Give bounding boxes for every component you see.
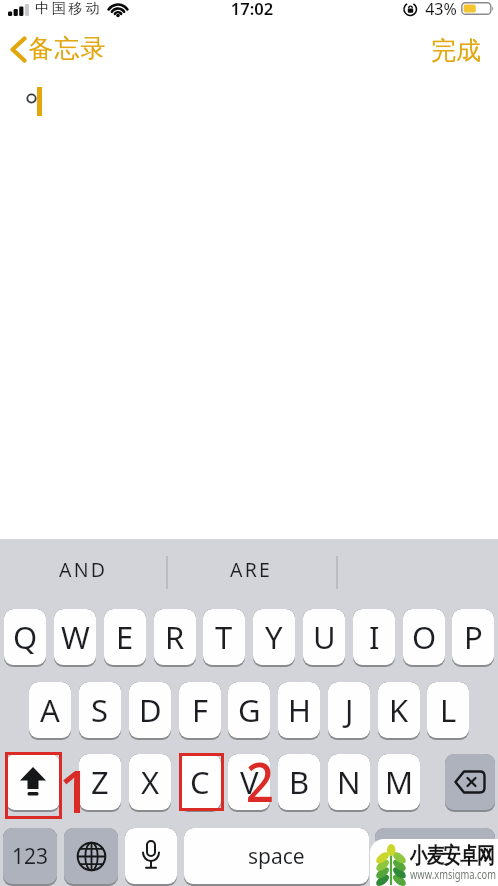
staticText: B xyxy=(289,761,310,803)
staticText: O xyxy=(412,616,437,658)
staticText: 完成 xyxy=(431,35,481,66)
staticText: V xyxy=(240,761,259,803)
staticText: T xyxy=(215,616,233,658)
button[interactable]: 小麦安卓网 xyxy=(370,839,498,886)
staticText: S xyxy=(91,689,109,731)
staticText: Z xyxy=(91,761,109,803)
staticText: C xyxy=(190,761,210,803)
button[interactable]: A xyxy=(29,682,71,740)
staticText: H xyxy=(288,689,311,731)
staticText: I xyxy=(369,616,380,658)
staticText: X xyxy=(141,761,160,803)
staticText: 17:02 xyxy=(220,0,284,19)
button[interactable]: 123 xyxy=(3,828,57,886)
button[interactable] xyxy=(445,754,495,812)
button[interactable]: X xyxy=(129,754,171,812)
button[interactable]: space xyxy=(184,828,369,886)
button[interactable] xyxy=(375,828,495,886)
staticText: U xyxy=(313,616,336,658)
button[interactable]: B xyxy=(278,754,320,812)
button[interactable]: G xyxy=(228,682,270,740)
staticText: F xyxy=(192,689,209,731)
staticText: 43% xyxy=(421,0,461,20)
button[interactable]: P xyxy=(452,609,494,667)
button[interactable]: C xyxy=(179,754,221,812)
button[interactable] xyxy=(125,828,177,886)
button[interactable]: F xyxy=(179,682,221,740)
button[interactable]: Q xyxy=(4,609,46,667)
button[interactable]: I xyxy=(353,609,395,667)
staticText: P xyxy=(464,616,483,658)
button[interactable]: R xyxy=(154,609,196,667)
staticText: Y xyxy=(265,616,283,658)
button[interactable]: W xyxy=(54,609,96,667)
staticText: E xyxy=(116,616,134,658)
staticText: J xyxy=(345,689,354,731)
staticText: 1 xyxy=(47,751,103,830)
staticText: 中国移动 xyxy=(35,0,103,18)
button[interactable]: K xyxy=(378,682,420,740)
button[interactable]: M xyxy=(378,754,420,812)
button[interactable]: S xyxy=(79,682,121,740)
button[interactable]: T xyxy=(203,609,245,667)
button[interactable]: Z xyxy=(79,754,121,812)
button[interactable]: U xyxy=(303,609,345,667)
staticText: 2 xyxy=(235,743,285,818)
staticText: 小麦安卓网 xyxy=(410,842,494,868)
staticText: M xyxy=(385,761,414,803)
button[interactable]: L xyxy=(427,682,469,740)
button[interactable]: H xyxy=(278,682,320,740)
staticText: 备忘录 xyxy=(28,33,106,64)
staticText: AND xyxy=(59,556,108,583)
button[interactable]: N xyxy=(328,754,370,812)
staticText: A xyxy=(40,689,60,731)
button[interactable]: O xyxy=(403,609,445,667)
button[interactable]: ARE xyxy=(167,543,335,595)
staticText: W xyxy=(61,616,90,658)
staticText: space xyxy=(248,842,305,871)
button[interactable]: V xyxy=(228,754,270,812)
button[interactable]: 完成 xyxy=(425,30,489,68)
button[interactable]: Y xyxy=(253,609,295,667)
button[interactable] xyxy=(64,828,118,886)
staticText: ARE xyxy=(230,556,273,583)
staticText: Q xyxy=(13,616,38,658)
staticText: www.xmsigma.com xyxy=(410,866,497,882)
button[interactable]: J xyxy=(328,682,370,740)
button[interactable]: E xyxy=(104,609,146,667)
button[interactable]: AND xyxy=(0,543,166,595)
staticText: N xyxy=(337,761,361,803)
staticText: R xyxy=(165,616,185,658)
button[interactable]: 备忘录 xyxy=(4,30,124,68)
staticText: D xyxy=(139,689,162,731)
button[interactable] xyxy=(6,754,60,812)
staticText: G xyxy=(238,689,261,731)
staticText: 123 xyxy=(12,842,49,871)
staticText: K xyxy=(389,689,409,731)
staticText: L xyxy=(440,689,457,731)
button[interactable]: D xyxy=(129,682,171,740)
